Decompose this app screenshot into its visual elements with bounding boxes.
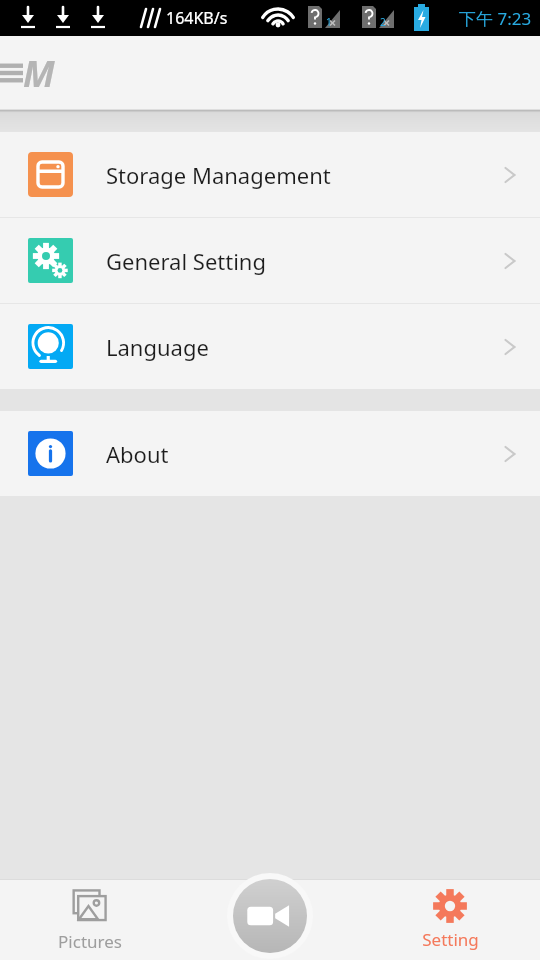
staticText: 164KB/s bbox=[166, 7, 228, 29]
button[interactable]: About bbox=[0, 411, 540, 496]
button[interactable]: Pictures bbox=[0, 880, 180, 960]
staticText: 2 bbox=[380, 15, 386, 29]
staticText: 下午 7:23 bbox=[459, 7, 532, 30]
staticText: Pictures bbox=[58, 930, 122, 953]
button[interactable]: Language bbox=[0, 304, 540, 389]
staticText: M bbox=[23, 49, 55, 98]
staticText: Setting bbox=[422, 928, 479, 951]
button[interactable]: Menu bbox=[0, 53, 30, 93]
staticText: Storage Management bbox=[106, 160, 496, 190]
staticText: 1 bbox=[326, 15, 332, 29]
button[interactable]: Setting bbox=[360, 880, 540, 960]
staticText: Language bbox=[106, 332, 496, 362]
button[interactable]: Storage Management bbox=[0, 132, 540, 217]
staticText: About bbox=[106, 439, 496, 469]
button[interactable]: General Setting bbox=[0, 218, 540, 303]
staticText: General Setting bbox=[106, 246, 496, 276]
button[interactable]: Record video bbox=[227, 873, 313, 959]
